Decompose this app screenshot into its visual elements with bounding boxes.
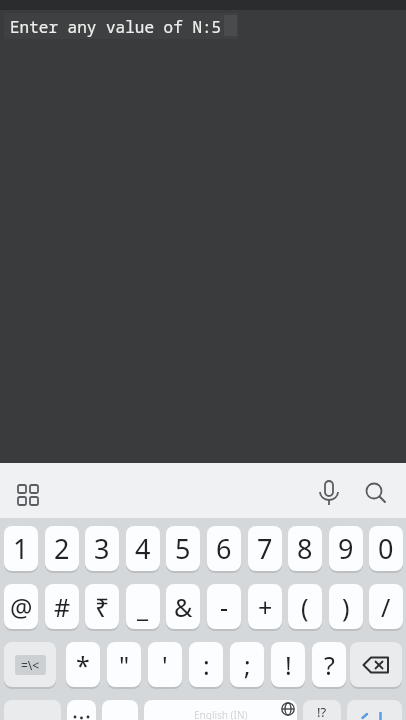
button[interactable]: + — [248, 584, 282, 629]
button[interactable]: 2 — [45, 526, 79, 571]
button[interactable] — [102, 700, 138, 720]
staticText: =\< — [21, 657, 40, 673]
staticText: : — [203, 648, 210, 682]
staticText: 3 — [94, 530, 110, 567]
button[interactable]: !? — [303, 700, 341, 720]
button[interactable]: 3 — [85, 526, 119, 571]
staticText: " — [119, 648, 130, 682]
button[interactable]: & — [166, 584, 200, 629]
staticText: 8 — [297, 530, 313, 567]
button[interactable]: ₹ — [85, 584, 119, 629]
button[interactable] — [12, 477, 44, 509]
button[interactable]: @ — [4, 584, 38, 629]
button[interactable] — [360, 478, 392, 510]
button[interactable]: 6 — [207, 526, 241, 571]
button[interactable]: # — [45, 584, 79, 629]
staticText: & — [174, 590, 193, 624]
button[interactable] — [347, 700, 402, 720]
staticText: 7 — [257, 530, 273, 567]
staticText: * — [76, 648, 90, 682]
button[interactable]: " — [107, 642, 141, 687]
staticText: @ — [10, 590, 33, 624]
staticText: ₹ — [95, 590, 110, 624]
button[interactable]: 9 — [329, 526, 363, 571]
staticText: English (IN) — [194, 708, 248, 720]
staticText: !? — [317, 703, 327, 720]
staticText: _ — [137, 590, 149, 624]
staticText: 0 — [378, 530, 394, 567]
staticText: + — [258, 590, 273, 624]
button[interactable]: / — [369, 584, 403, 629]
staticText: ( — [301, 590, 309, 624]
button[interactable]: 8 — [288, 526, 322, 571]
button[interactable]: : — [189, 642, 223, 687]
staticText: ! — [285, 648, 292, 682]
staticText: 5 — [175, 530, 191, 567]
staticText: 2 — [54, 530, 70, 567]
staticText: 1 — [13, 530, 29, 567]
staticText: 9 — [338, 530, 354, 567]
button[interactable]: ? — [312, 642, 346, 687]
staticText: # — [54, 590, 71, 624]
button[interactable]: - — [207, 584, 241, 629]
button[interactable]: 4 — [126, 526, 160, 571]
staticText: Enter any value of N:5 — [10, 16, 222, 38]
button[interactable]: ( — [288, 584, 322, 629]
button[interactable] — [314, 478, 344, 510]
button[interactable] — [67, 700, 96, 720]
staticText: ) — [342, 590, 350, 624]
button[interactable]: =\< — [4, 642, 56, 687]
button[interactable]: 1 — [4, 526, 38, 571]
staticText: 4 — [135, 530, 151, 567]
staticText: / — [381, 590, 391, 624]
button[interactable]: _ — [126, 584, 160, 629]
button[interactable]: English (IN) — [144, 700, 297, 720]
button[interactable]: ' — [148, 642, 182, 687]
button[interactable]: 7 — [248, 526, 282, 571]
button[interactable] — [350, 642, 402, 687]
button[interactable]: ; — [230, 642, 264, 687]
button[interactable]: ) — [329, 584, 363, 629]
button[interactable]: * — [66, 642, 100, 687]
staticText: - — [220, 590, 229, 624]
button[interactable]: 5 — [166, 526, 200, 571]
button[interactable]: 0 — [369, 526, 403, 571]
staticText: ; — [244, 648, 251, 682]
staticText: ' — [162, 648, 168, 682]
staticText: ? — [324, 648, 335, 682]
button[interactable]: ! — [271, 642, 305, 687]
staticText: 6 — [216, 530, 232, 567]
